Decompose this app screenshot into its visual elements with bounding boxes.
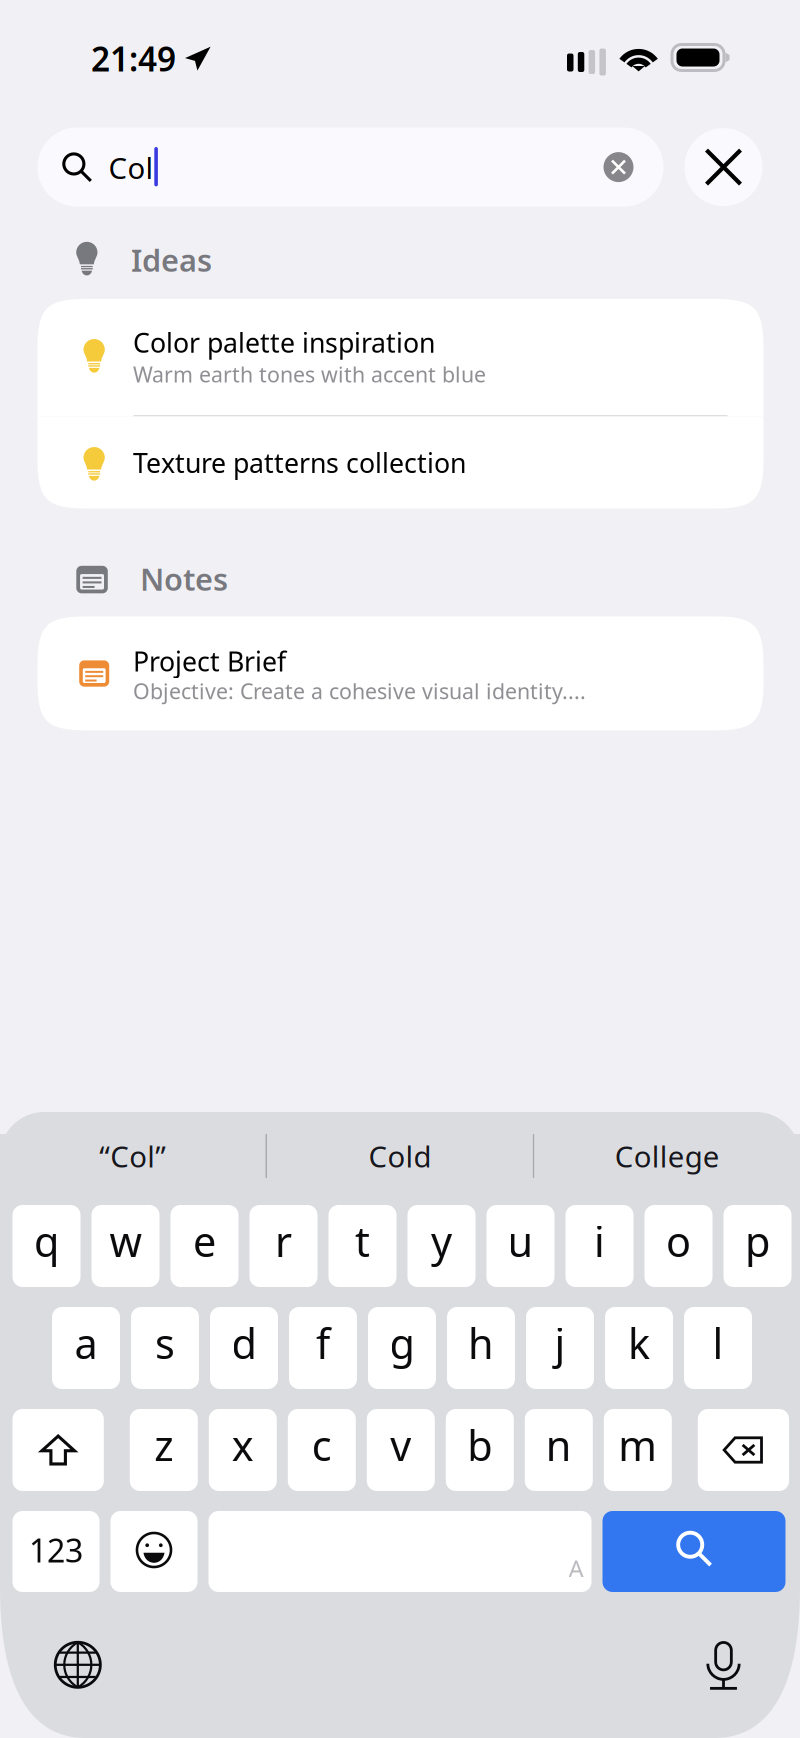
button[interactable]: Texture patterns collection — [37, 416, 763, 508]
button[interactable]: Project Brief — [37, 616, 763, 730]
button[interactable]: d — [210, 1307, 278, 1389]
button[interactable]: c — [288, 1409, 356, 1491]
button[interactable]: Shift — [12, 1409, 104, 1491]
button[interactable]: Color palette inspiration — [37, 299, 763, 415]
staticText: c — [312, 1418, 332, 1472]
staticText: Ideas — [131, 239, 212, 280]
button[interactable]: s — [131, 1307, 199, 1389]
button[interactable]: x — [209, 1409, 277, 1491]
button[interactable]: Clear text — [603, 152, 633, 182]
button[interactable]: Close search — [684, 128, 762, 206]
staticText: e — [193, 1214, 216, 1268]
staticText: x — [232, 1418, 254, 1472]
button[interactable]: r — [249, 1205, 317, 1287]
button[interactable]: Delete — [698, 1409, 789, 1491]
button[interactable]: l — [684, 1307, 752, 1389]
staticText: j — [554, 1316, 565, 1370]
button[interactable]: j — [526, 1307, 594, 1389]
staticText: k — [628, 1316, 650, 1370]
button[interactable]: a — [52, 1307, 120, 1389]
staticText: l — [712, 1316, 723, 1370]
staticText: n — [546, 1418, 572, 1472]
button[interactable]: m — [604, 1409, 672, 1491]
staticText: g — [389, 1316, 414, 1370]
button[interactable]: f — [289, 1307, 357, 1389]
staticText: Cold — [368, 1136, 431, 1175]
staticText: q — [34, 1214, 59, 1268]
staticText: d — [231, 1316, 256, 1370]
staticText: t — [355, 1214, 370, 1268]
button[interactable]: Next keyboard — [42, 1629, 114, 1701]
staticText: s — [155, 1316, 175, 1370]
staticText: a — [74, 1316, 97, 1370]
staticText: Col — [108, 148, 153, 187]
staticText: y — [431, 1214, 452, 1268]
button[interactable]: y — [407, 1205, 475, 1287]
button[interactable]: Space — [208, 1511, 591, 1592]
button[interactable]: i — [565, 1205, 633, 1287]
staticText: m — [618, 1418, 657, 1472]
button[interactable]: e — [170, 1205, 238, 1287]
button[interactable]: b — [446, 1409, 514, 1491]
button[interactable]: p — [723, 1205, 791, 1287]
button[interactable]: u — [486, 1205, 554, 1287]
staticText: h — [468, 1316, 494, 1370]
staticText: College — [615, 1136, 720, 1175]
button[interactable]: g — [368, 1307, 436, 1389]
button[interactable]: t — [328, 1205, 396, 1287]
staticText: f — [316, 1316, 330, 1370]
button[interactable]: Cold — [267, 1134, 533, 1178]
staticText: “Col” — [99, 1136, 166, 1175]
staticText: 123 — [29, 1529, 83, 1571]
staticText: Texture patterns collection — [133, 445, 466, 480]
button[interactable]: 123 — [12, 1511, 99, 1592]
button[interactable]: z — [130, 1409, 198, 1491]
staticText: Project Brief — [133, 643, 286, 679]
staticText: Color palette inspiration — [133, 325, 435, 360]
staticText: w — [109, 1214, 141, 1268]
button[interactable]: k — [605, 1307, 673, 1389]
staticText: A — [568, 1552, 583, 1584]
staticText: p — [745, 1214, 770, 1268]
button[interactable]: o — [644, 1205, 712, 1287]
staticText: r — [275, 1214, 292, 1268]
button[interactable]: v — [367, 1409, 435, 1491]
button[interactable]: h — [447, 1307, 515, 1389]
button[interactable]: w — [91, 1205, 159, 1287]
button[interactable]: Search — [602, 1511, 785, 1592]
staticText: Notes — [140, 558, 228, 599]
button[interactable]: College — [534, 1134, 800, 1178]
staticText: z — [154, 1418, 173, 1472]
staticText: 21:49 — [91, 36, 176, 81]
button[interactable]: n — [525, 1409, 593, 1491]
button[interactable]: q — [12, 1205, 80, 1287]
button[interactable]: Dictation — [687, 1629, 759, 1701]
staticText: o — [666, 1214, 691, 1268]
staticText: u — [507, 1214, 533, 1268]
button[interactable]: Emoji — [110, 1511, 197, 1592]
button[interactable]: “Col” — [0, 1134, 266, 1178]
staticText: v — [390, 1418, 411, 1472]
staticText: b — [467, 1418, 492, 1472]
staticText: i — [594, 1214, 605, 1268]
staticText: Warm earth tones with accent blue — [133, 360, 486, 388]
staticText: Objective: Create a cohesive visual iden… — [133, 677, 586, 705]
